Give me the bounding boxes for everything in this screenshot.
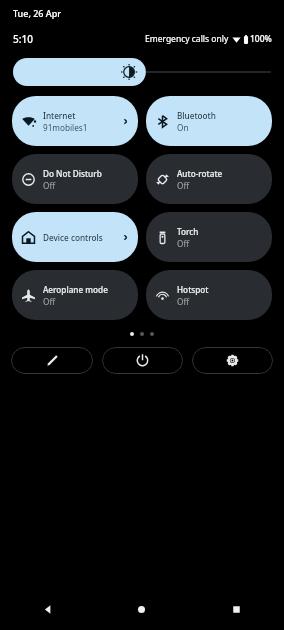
staticText: Off xyxy=(43,180,56,191)
staticText: On xyxy=(177,122,189,133)
staticText: Aeroplane mode xyxy=(43,284,108,295)
button[interactable]: Recents xyxy=(189,588,284,630)
staticText: Off xyxy=(177,238,190,249)
staticText: Internet xyxy=(43,110,76,121)
staticText: 91mobiles1 xyxy=(43,122,88,133)
button[interactable]: Auto-rotate xyxy=(146,154,272,204)
staticText: Off xyxy=(177,180,190,191)
staticText: Device controls xyxy=(43,232,103,243)
button[interactable]: Device controls xyxy=(12,212,138,262)
button[interactable]: Brightness xyxy=(13,58,271,86)
button[interactable]: Edit xyxy=(11,347,93,374)
staticText: Emergency calls only xyxy=(145,33,229,45)
staticText: Do Not Disturb xyxy=(43,168,102,179)
button[interactable]: Hotspot xyxy=(146,270,272,320)
button[interactable]: Internet xyxy=(12,96,138,146)
button[interactable]: Aeroplane mode xyxy=(12,270,138,320)
staticText: Tue, 26 Apr xyxy=(13,7,62,19)
button[interactable]: Bluetooth xyxy=(146,96,272,146)
staticText: Torch xyxy=(177,226,199,237)
button[interactable]: Power xyxy=(102,347,183,374)
button[interactable]: Torch xyxy=(146,212,272,262)
button[interactable]: Home xyxy=(94,588,189,630)
button[interactable]: Settings xyxy=(192,347,273,374)
staticText: Auto-rotate xyxy=(177,168,223,179)
staticText: Hotspot xyxy=(177,284,209,295)
staticText: 5:10 xyxy=(13,32,33,46)
staticText: Bluetooth xyxy=(177,110,216,121)
staticText: Off xyxy=(177,296,190,307)
staticText: Off xyxy=(43,296,56,307)
staticText: 100% xyxy=(250,33,272,45)
button[interactable]: Back xyxy=(0,588,94,630)
button[interactable]: Do Not Disturb xyxy=(12,154,138,204)
